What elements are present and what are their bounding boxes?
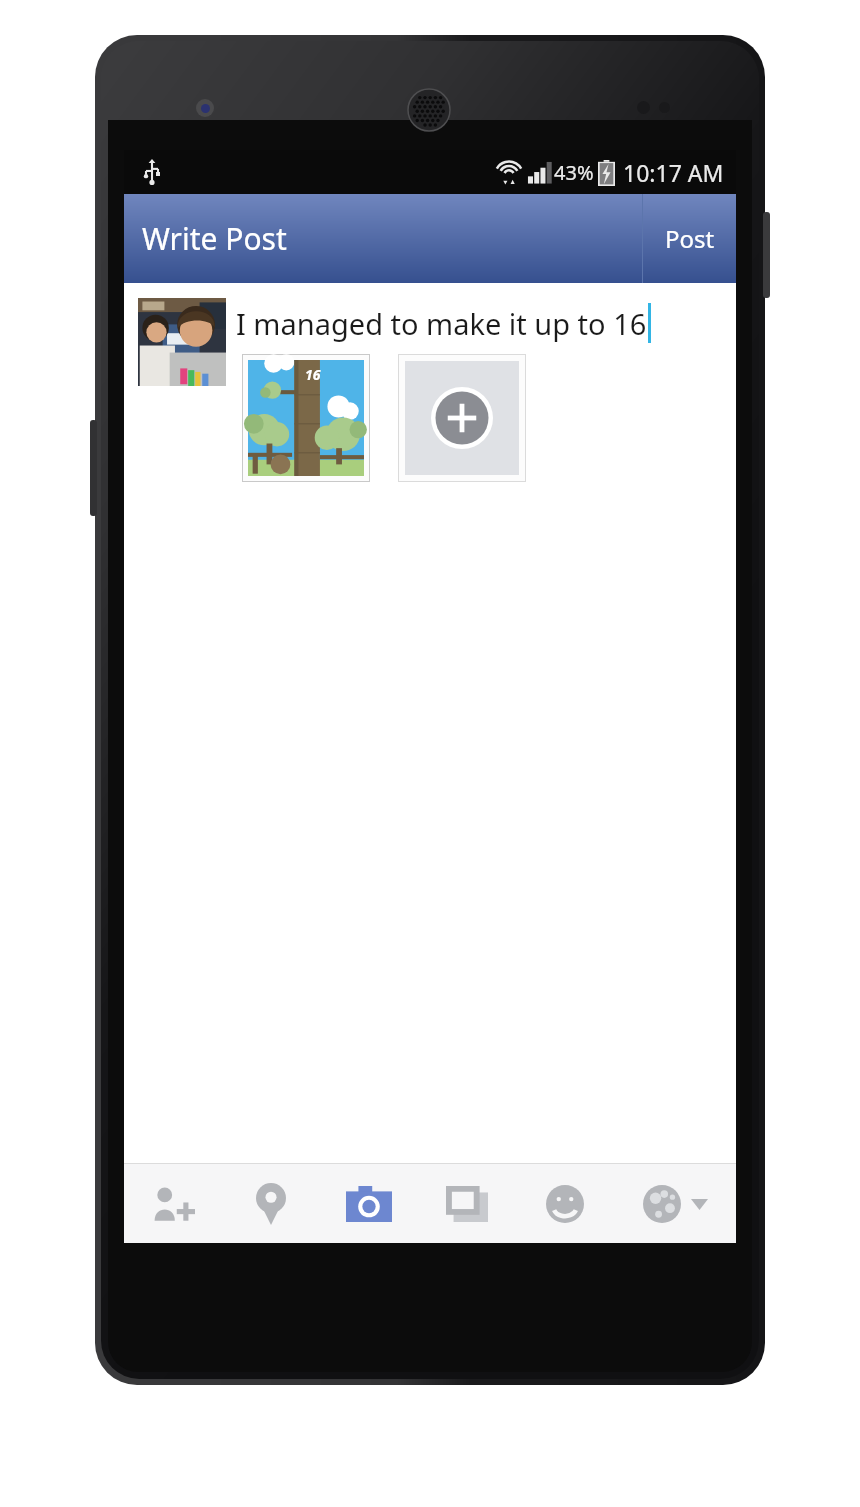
staticText: 43%: [554, 159, 594, 186]
button[interactable]: I managed to make it up to 16: [236, 299, 651, 347]
button[interactable]: Tag people: [124, 1164, 222, 1243]
staticText: I managed to make it up to 16: [236, 304, 647, 343]
button[interactable]: Write Post: [124, 194, 642, 283]
button[interactable]: Post: [643, 194, 736, 283]
button[interactable]: Audience: Public: [614, 1164, 736, 1243]
button[interactable]: Feeling: [516, 1164, 614, 1243]
staticText: Post: [665, 222, 715, 255]
button[interactable]: Photo album: [418, 1164, 516, 1243]
staticText: Write Post: [142, 218, 287, 259]
button[interactable]: Attached screenshot: [248, 360, 364, 476]
button[interactable]: Add photo: [405, 361, 519, 475]
staticText: 10:17 AM: [623, 157, 724, 188]
button[interactable]: Camera: [320, 1164, 418, 1243]
staticText: 16: [305, 365, 321, 384]
button[interactable]: Check in: [222, 1164, 320, 1243]
